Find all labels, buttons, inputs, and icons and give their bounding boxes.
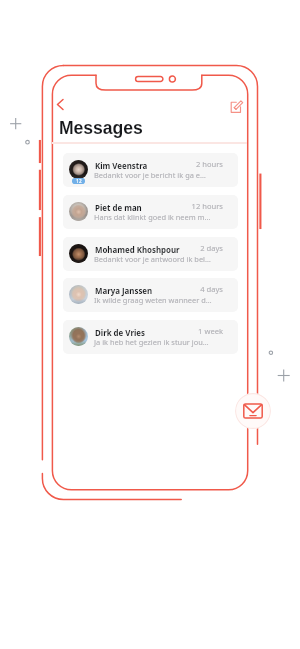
staticText: Bedankt voor je bericht ik ga e… (94, 170, 206, 180)
button[interactable]: 12 (63, 153, 238, 187)
staticText: Dirk de Vries (95, 328, 145, 339)
button[interactable]: Back (54, 97, 69, 112)
staticText: Piet de man (95, 203, 142, 214)
button[interactable]: New message (235, 393, 271, 429)
button[interactable]: Dirk de Vries (63, 320, 238, 354)
button[interactable]: Marya Janssen (63, 278, 238, 312)
button[interactable]: Mohamed Khoshpour (63, 237, 238, 271)
staticText: 2 hours (163, 159, 223, 169)
staticText: 12 hours (163, 201, 223, 211)
staticText: Marya Janssen (95, 286, 153, 297)
button[interactable]: Piet de man (63, 195, 238, 229)
staticText: Messages (59, 118, 143, 138)
staticText: 2 days (163, 243, 223, 253)
staticText: Hans dat klinkt goed ik neem m… (94, 212, 211, 222)
staticText: 12 (76, 178, 82, 184)
staticText: 4 days (163, 284, 223, 294)
staticText: Ik wilde graag weten wanneer d… (94, 295, 212, 305)
staticText: 1 week (163, 326, 223, 336)
staticText: Bedankt voor je antwoord ik bel… (94, 254, 211, 264)
staticText: Mohamed Khoshpour (95, 245, 180, 256)
staticText: Kim Veenstra (95, 161, 148, 172)
staticText: Ja ik heb het gezien ik stuur jou… (94, 337, 209, 347)
button[interactable]: Compose new message (229, 98, 244, 113)
